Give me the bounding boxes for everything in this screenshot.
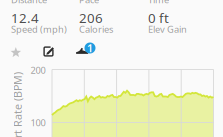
staticText: 100	[30, 116, 45, 129]
staticText: Pace	[79, 0, 99, 6]
staticText: 206	[79, 9, 103, 27]
staticText: Heart Rate (BPM)	[0, 108, 60, 122]
staticText: 200	[30, 64, 45, 76]
staticText: Distance	[11, 0, 47, 6]
button[interactable]: Give kudos	[10, 47, 38, 65]
button[interactable]: Gear, 1	[76, 42, 102, 60]
staticText: Time	[148, 0, 169, 6]
staticText: 1	[87, 41, 93, 55]
staticText: Speed (mph)	[11, 23, 67, 35]
staticText: Elev Gain	[148, 23, 187, 35]
staticText: 0 ft	[148, 9, 169, 27]
staticText: 12.4	[11, 9, 39, 27]
staticText: Calories	[79, 23, 113, 35]
button[interactable]: Add a comment	[43, 46, 69, 64]
